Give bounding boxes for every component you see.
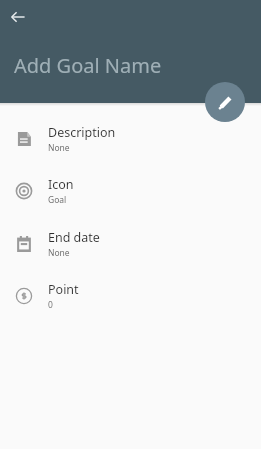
- button[interactable]: End date: [0, 218, 261, 270]
- button[interactable]: Description: [0, 113, 261, 165]
- button[interactable]: Back: [6, 5, 29, 28]
- staticText: Goal: [48, 194, 67, 206]
- button[interactable]: Edit: [205, 82, 245, 122]
- staticText: Add Goal Name: [14, 52, 162, 79]
- staticText: Description: [48, 124, 116, 141]
- button[interactable]: Point: [0, 270, 261, 322]
- staticText: None: [48, 247, 70, 259]
- staticText: Icon: [48, 176, 74, 193]
- button[interactable]: Icon: [0, 165, 261, 217]
- staticText: None: [48, 142, 70, 154]
- staticText: Point: [48, 281, 79, 298]
- staticText: 0: [48, 299, 53, 311]
- staticText: End date: [48, 229, 100, 246]
